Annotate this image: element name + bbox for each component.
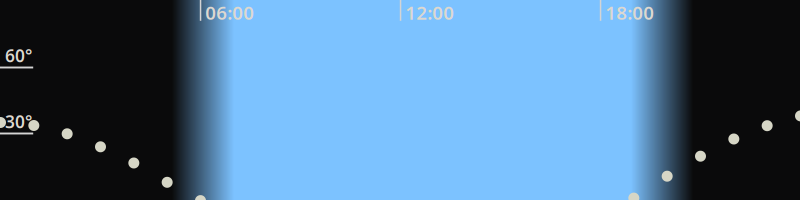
staticText: 06:00 [205, 0, 254, 25]
staticText: 12:00 [405, 0, 454, 25]
staticText: 30° [5, 110, 32, 133]
staticText: 60° [5, 44, 32, 67]
staticText: 18:00 [605, 0, 654, 25]
